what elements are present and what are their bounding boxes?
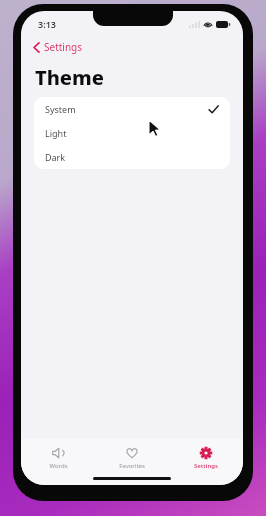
staticText: System xyxy=(45,103,76,115)
other: Settings xyxy=(199,446,213,460)
button[interactable]: Settings xyxy=(169,444,243,472)
staticText: Words xyxy=(49,462,68,470)
button[interactable]: Settings xyxy=(21,36,243,58)
button[interactable]: Dark xyxy=(34,145,230,169)
staticText: Light xyxy=(45,127,67,139)
staticText: Dark xyxy=(45,151,66,163)
button[interactable]: Light xyxy=(34,121,230,145)
other: Favorites xyxy=(125,446,139,460)
button[interactable]: System xyxy=(34,97,230,121)
staticText: Settings xyxy=(194,462,218,470)
staticText: 3:13 xyxy=(38,18,56,30)
staticText: Theme xyxy=(35,64,104,91)
staticText: Favorites xyxy=(119,462,145,470)
other: Words xyxy=(51,446,65,460)
button[interactable]: Favorites xyxy=(95,444,169,472)
button[interactable]: Words xyxy=(21,444,95,472)
staticText: Settings xyxy=(44,40,83,54)
